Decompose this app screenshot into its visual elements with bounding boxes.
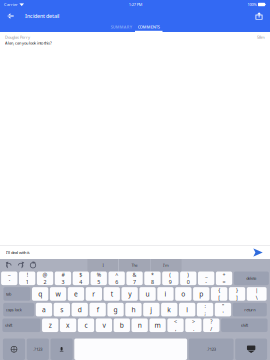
button[interactable]: > <box>185 318 202 332</box>
button[interactable]: $ <box>73 271 89 285</box>
button[interactable]: % <box>91 271 107 285</box>
button[interactable]: k <box>161 303 177 316</box>
button[interactable]: tab <box>3 287 30 301</box>
staticText: 1 <box>26 278 29 286</box>
button[interactable]: g <box>107 303 124 316</box>
button[interactable]: j <box>143 303 159 316</box>
staticText: r <box>92 289 95 298</box>
button[interactable]: r <box>86 287 102 301</box>
button[interactable]: + <box>216 271 232 285</box>
button[interactable]: ^ <box>108 271 125 285</box>
button[interactable]: Hide keyboard <box>235 338 267 360</box>
staticText: I'm <box>163 263 169 268</box>
button[interactable]: f <box>89 303 106 316</box>
button[interactable]: v <box>96 318 112 332</box>
button[interactable]: ~ <box>1 271 17 285</box>
button[interactable]: Paste <box>27 259 39 271</box>
staticText: COMMENTS <box>138 24 160 29</box>
staticText: u <box>146 289 150 298</box>
button[interactable]: .?123 <box>189 338 234 360</box>
staticText: h <box>131 305 135 314</box>
button[interactable]: @ <box>37 271 53 285</box>
button[interactable]: Back <box>0 9 21 23</box>
staticText: 0 <box>187 278 190 286</box>
button[interactable]: I'm <box>151 259 182 271</box>
button[interactable]: Share <box>250 9 268 23</box>
staticText: , <box>175 325 176 332</box>
button[interactable]: caps lock <box>3 303 34 316</box>
staticText: ] <box>236 294 238 301</box>
button[interactable]: ( <box>162 271 178 285</box>
button[interactable]: ! <box>19 271 35 285</box>
staticText: . <box>193 325 194 332</box>
button[interactable]: s <box>54 303 70 316</box>
button[interactable]: * <box>144 271 161 285</box>
staticText: l <box>186 305 188 314</box>
staticText: 100% <box>248 2 257 7</box>
button[interactable]: SUMMARY <box>107 23 135 32</box>
staticText: 1:27 PM <box>129 2 143 7</box>
staticText: x <box>66 321 70 330</box>
button[interactable]: d <box>72 303 88 316</box>
button[interactable]: shift <box>221 318 268 332</box>
button[interactable]: " <box>215 303 231 316</box>
button[interactable]: < <box>167 318 184 332</box>
button[interactable]: .?123 <box>27 338 49 360</box>
staticText: Alan, can you look into this? <box>5 40 52 46</box>
staticText: Douglas Perry <box>5 34 30 40</box>
staticText: caps lock <box>6 307 22 312</box>
button[interactable]: t <box>104 287 120 301</box>
button[interactable]: # <box>55 271 71 285</box>
button[interactable]: COMMENTS <box>135 23 162 32</box>
staticText: : <box>205 302 206 309</box>
button[interactable]: m <box>149 318 166 332</box>
button[interactable]: Redo <box>15 259 27 271</box>
button[interactable]: c <box>78 318 94 332</box>
button[interactable]: h <box>125 303 142 316</box>
button[interactable]: ) <box>180 271 196 285</box>
button[interactable]: i <box>157 287 174 301</box>
staticText: The <box>131 263 137 268</box>
button[interactable]: { <box>211 287 227 301</box>
button[interactable]: a <box>36 303 52 316</box>
button[interactable]: Dictate <box>50 338 73 360</box>
button[interactable]: Send <box>248 246 268 259</box>
staticText: Carrier <box>4 2 18 7</box>
button[interactable]: Undo <box>3 259 15 271</box>
button[interactable]: & <box>126 271 143 285</box>
button[interactable]: n <box>132 318 148 332</box>
staticText: 2 <box>43 278 46 286</box>
staticText: y <box>128 289 131 298</box>
button[interactable]: z <box>42 318 58 332</box>
button[interactable]: I <box>87 259 118 271</box>
staticText: I <box>102 263 103 268</box>
button[interactable]: p <box>193 287 209 301</box>
button[interactable]: e <box>68 287 84 301</box>
button[interactable]: _ <box>198 271 214 285</box>
button[interactable]: l <box>179 303 195 316</box>
button[interactable]: | <box>247 287 267 301</box>
button[interactable]: b <box>114 318 130 332</box>
staticText: g <box>114 305 118 314</box>
button[interactable]: q <box>32 287 48 301</box>
button[interactable]: u <box>139 287 156 301</box>
button[interactable]: Emoji <box>3 338 25 360</box>
button[interactable]: The <box>119 259 150 271</box>
staticText: a <box>42 305 46 314</box>
staticText: return <box>244 307 255 312</box>
button[interactable]: } <box>229 287 245 301</box>
button[interactable]: shift <box>2 318 40 332</box>
button[interactable] <box>74 338 187 360</box>
button[interactable]: o <box>175 287 191 301</box>
button[interactable]: return <box>233 303 267 316</box>
button[interactable]: delete <box>234 271 269 285</box>
staticText: .?123 <box>33 347 42 352</box>
staticText: I'll deal with it. <box>6 250 30 255</box>
button[interactable]: y <box>121 287 138 301</box>
button[interactable]: ? <box>203 318 219 332</box>
staticText: n <box>138 321 142 330</box>
staticText: Incident detail <box>25 12 59 20</box>
button[interactable]: x <box>60 318 76 332</box>
button[interactable]: w <box>50 287 66 301</box>
button[interactable]: : <box>197 303 213 316</box>
